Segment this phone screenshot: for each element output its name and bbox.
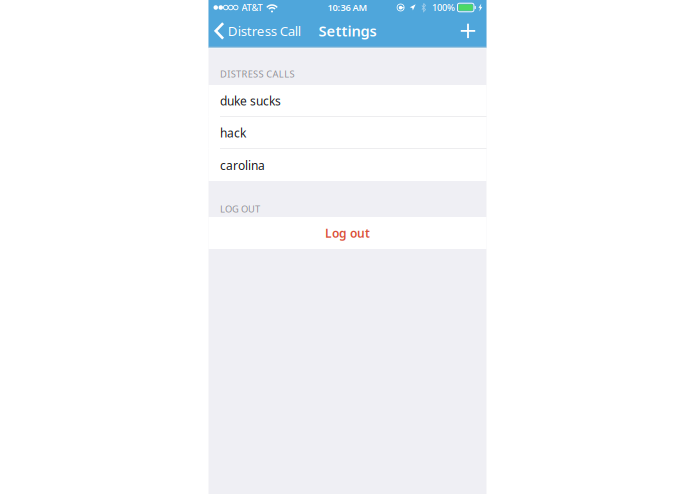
button[interactable]: duke sucks <box>208 85 486 117</box>
staticText: 10:36 AM <box>327 1 367 14</box>
button[interactable]: carolina <box>208 149 486 181</box>
button[interactable]: hack <box>208 117 486 149</box>
staticText: duke sucks <box>220 93 281 109</box>
staticText: Distress Call <box>228 22 301 40</box>
button[interactable]: Add <box>448 15 486 47</box>
staticText: hack <box>220 125 246 141</box>
staticText: 100% <box>432 1 455 14</box>
staticText: Settings <box>318 21 376 41</box>
staticText: AT&T <box>241 1 262 14</box>
button[interactable]: Log out <box>208 217 486 249</box>
staticText: DISTRESS CALLS <box>220 68 294 80</box>
staticText: LOG OUT <box>220 203 260 215</box>
button[interactable]: Distress Call <box>208 15 309 47</box>
staticText: carolina <box>220 157 265 173</box>
staticText: Log out <box>325 225 370 241</box>
